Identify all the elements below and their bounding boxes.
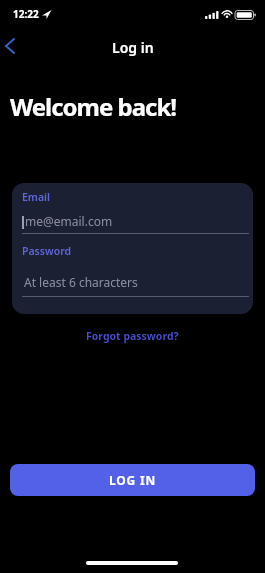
staticText: At least 6 characters	[24, 274, 138, 290]
staticText: LOG IN	[109, 472, 156, 488]
staticText: Welcome back!	[10, 90, 177, 123]
button[interactable]: Forgot password?	[80, 327, 185, 345]
staticText: Log in	[112, 38, 154, 57]
button[interactable]: LOG IN	[10, 464, 255, 496]
staticText: 12:22	[13, 7, 39, 21]
button[interactable]: Password	[12, 237, 253, 299]
staticText: me@email.com	[25, 213, 113, 229]
staticText: Forgot password?	[86, 329, 179, 343]
staticText: Email	[22, 190, 51, 204]
button[interactable]: Email	[12, 183, 253, 235]
button[interactable]	[0, 34, 20, 58]
staticText: Password	[22, 244, 72, 258]
